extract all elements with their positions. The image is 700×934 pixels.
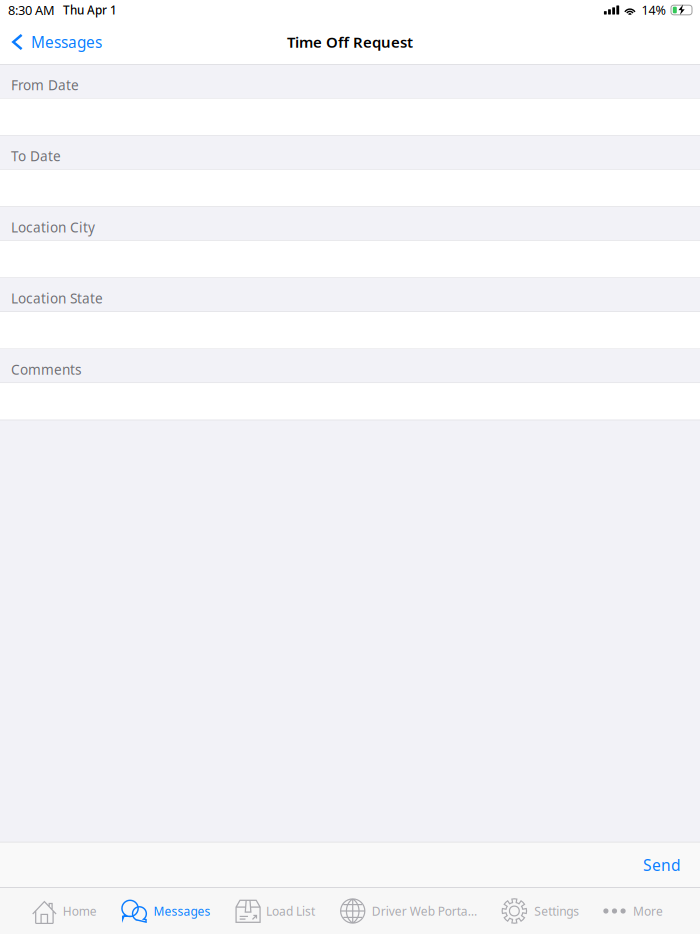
staticText: Location City — [11, 218, 95, 236]
staticText: From Date — [11, 76, 79, 94]
staticText: To Date — [11, 147, 61, 165]
staticText: Thu Apr 1 — [63, 2, 117, 18]
button[interactable]: Messages — [121, 888, 210, 934]
staticText: Load List — [266, 903, 315, 919]
staticText: 14% — [641, 1, 665, 19]
staticText: Messages — [153, 903, 210, 919]
staticText: Driver Web Porta… — [372, 903, 477, 919]
staticText: More — [633, 903, 663, 919]
staticText: Location State — [11, 289, 103, 307]
staticText: Send — [643, 854, 681, 875]
staticText: Home — [63, 903, 97, 919]
staticText: Comments — [11, 360, 82, 379]
staticText: Time Off Request — [287, 32, 413, 52]
button[interactable] — [0, 241, 700, 277]
button[interactable]: Load List — [235, 888, 315, 934]
button[interactable]: Home — [32, 888, 97, 934]
button[interactable]: Settings — [501, 888, 579, 934]
button[interactable]: Driver Web Porta… — [340, 888, 477, 934]
staticText: Messages — [31, 32, 102, 52]
staticText: 8:30 AM — [8, 1, 55, 19]
button[interactable]: Send — [624, 844, 700, 885]
button[interactable]: Messages — [0, 24, 110, 60]
button[interactable]: More — [604, 888, 663, 934]
staticText: Settings — [534, 903, 579, 919]
